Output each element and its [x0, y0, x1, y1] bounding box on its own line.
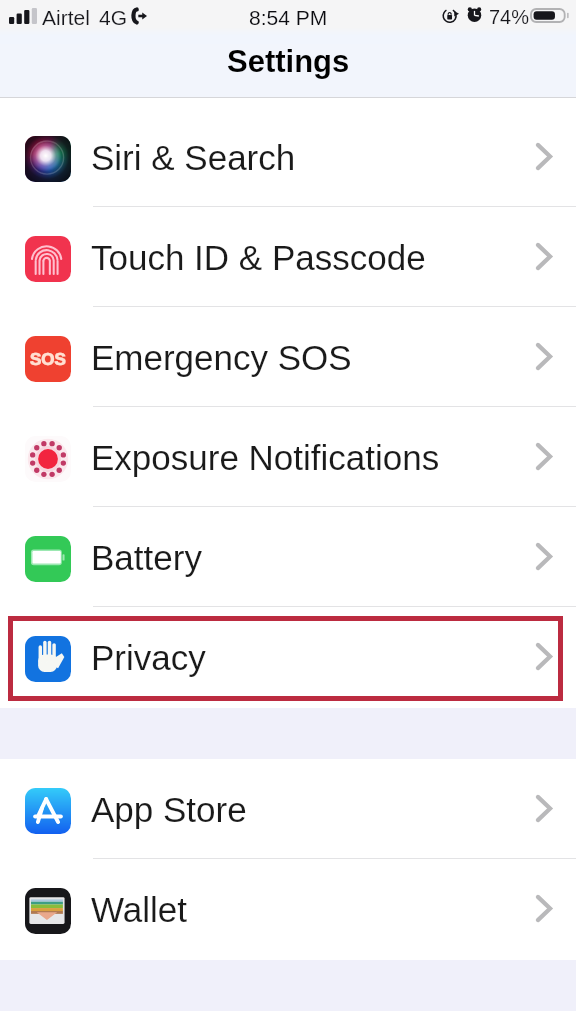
staticText: Settings: [227, 44, 350, 79]
staticText: 8:54 PM: [249, 6, 328, 29]
button[interactable]: Privacy: [0, 607, 576, 706]
button[interactable]: Battery: [0, 507, 576, 606]
button[interactable]: Siri & Search: [0, 107, 576, 206]
staticText: Touch ID & Passcode: [91, 238, 426, 277]
button[interactable]: App Store: [0, 759, 576, 858]
staticText: 4G: [99, 6, 128, 29]
button[interactable]: Emergency SOS: [0, 307, 576, 406]
staticText: SOS: [30, 350, 66, 369]
staticText: Wallet: [91, 890, 187, 929]
button[interactable]: Exposure Notifications: [0, 407, 576, 506]
button[interactable]: Touch ID & Passcode: [0, 207, 576, 306]
staticText: Emergency SOS: [91, 338, 352, 377]
staticText: Privacy: [91, 638, 206, 677]
button[interactable]: Wallet: [0, 859, 576, 958]
staticText: Airtel: [42, 6, 90, 29]
staticText: Exposure Notifications: [91, 438, 440, 477]
staticText: App Store: [91, 790, 247, 829]
staticText: Battery: [91, 538, 202, 577]
staticText: Siri & Search: [91, 138, 296, 177]
staticText: 74%: [489, 6, 530, 28]
